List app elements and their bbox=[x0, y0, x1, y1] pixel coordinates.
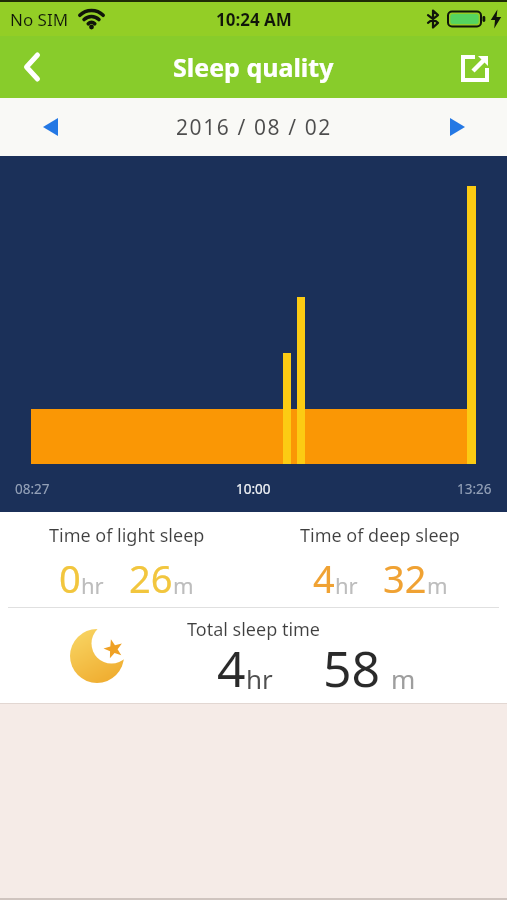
staticText: 0 bbox=[59, 552, 81, 604]
staticText: 32 bbox=[383, 552, 427, 604]
staticText: Time of deep sleep bbox=[300, 523, 460, 548]
staticText: Total sleep time bbox=[187, 617, 321, 642]
staticText: hr bbox=[81, 570, 104, 600]
staticText: m bbox=[173, 570, 194, 600]
staticText: m bbox=[391, 661, 416, 696]
staticText: 10:00 bbox=[236, 480, 271, 498]
staticText: Sleep quality bbox=[173, 50, 334, 84]
button[interactable]: 2016 / 08 / 02 bbox=[176, 113, 332, 142]
staticText: 4 bbox=[313, 552, 335, 604]
staticText: hr bbox=[246, 661, 273, 696]
staticText: hr bbox=[335, 570, 358, 600]
button[interactable] bbox=[435, 105, 479, 149]
button[interactable] bbox=[0, 36, 62, 98]
staticText: 26 bbox=[129, 552, 173, 604]
button[interactable] bbox=[447, 36, 507, 98]
button[interactable] bbox=[28, 105, 72, 149]
staticText: 4 bbox=[217, 634, 246, 702]
staticText: 08:27 bbox=[15, 480, 50, 498]
staticText: m bbox=[427, 570, 448, 600]
staticText: 13:26 bbox=[457, 480, 492, 498]
staticText: 58 bbox=[323, 634, 381, 702]
staticText: 10:24 AM bbox=[216, 8, 292, 31]
staticText: No SIM bbox=[10, 8, 69, 31]
staticText: Time of light sleep bbox=[49, 523, 205, 548]
